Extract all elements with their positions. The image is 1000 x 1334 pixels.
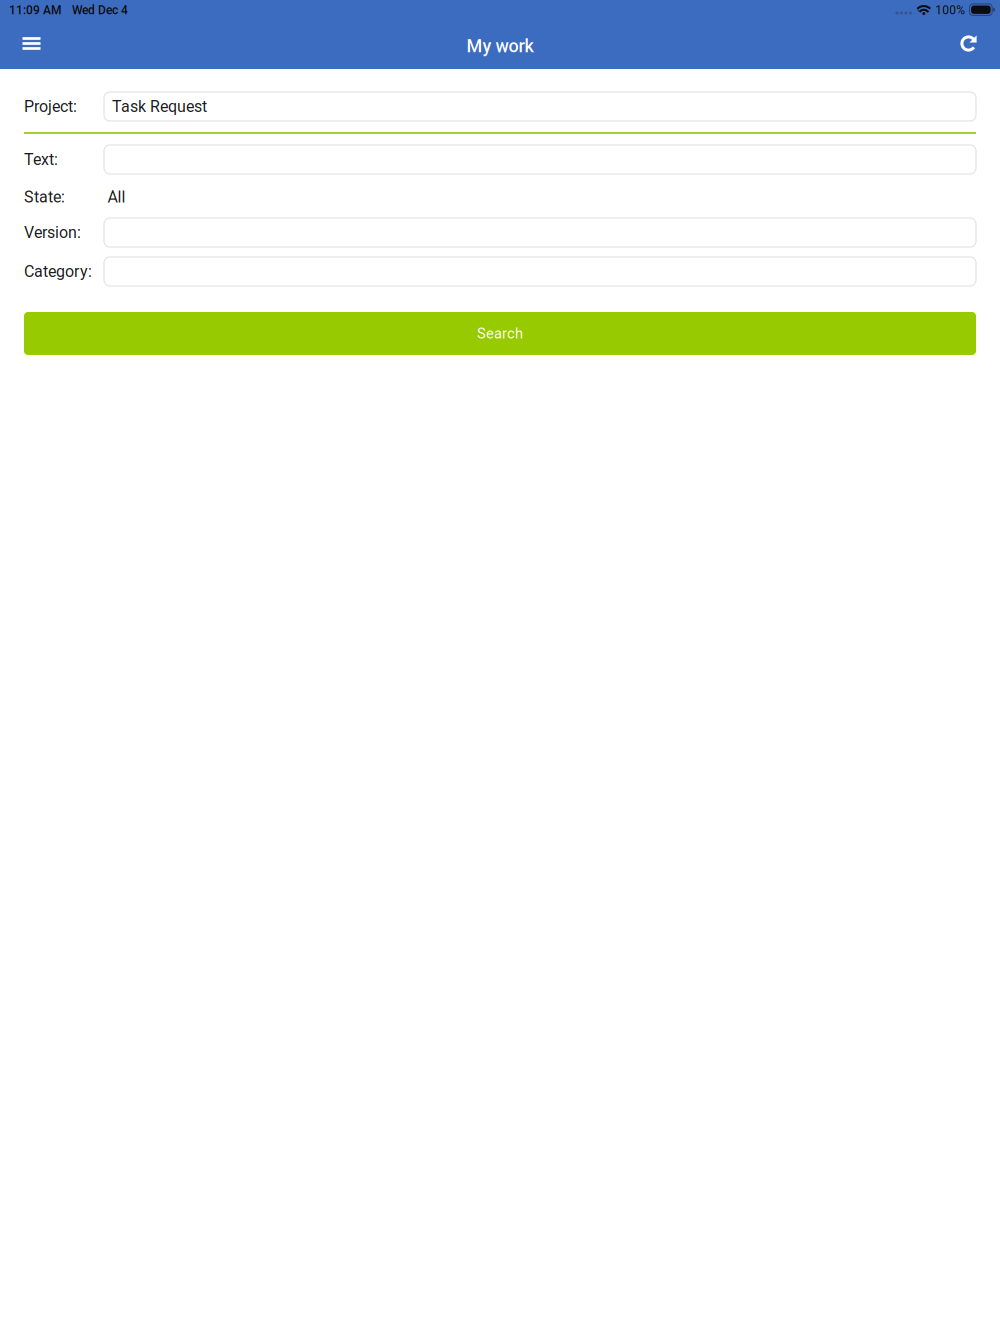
staticText: Search <box>477 325 523 342</box>
staticText: Project: <box>24 97 77 116</box>
button[interactable] <box>104 218 976 247</box>
staticText: My work <box>466 35 533 57</box>
button[interactable]: Refresh <box>946 23 991 68</box>
button[interactable] <box>104 145 976 174</box>
button[interactable] <box>104 257 976 286</box>
staticText: Task Request <box>112 97 207 116</box>
staticText: All <box>107 188 125 206</box>
staticText: Version: <box>24 223 81 242</box>
staticText: State: <box>24 188 65 206</box>
button[interactable]: All <box>104 184 976 210</box>
staticText: 11:09 AM <box>9 3 61 17</box>
button[interactable]: Menu <box>9 23 54 68</box>
staticText: Wed Dec 4 <box>72 3 128 17</box>
button[interactable]: Task Request <box>104 92 976 121</box>
staticText: 100% <box>935 3 965 17</box>
button[interactable]: Search <box>24 312 976 355</box>
staticText: Text: <box>24 150 58 169</box>
staticText: Category: <box>24 262 92 281</box>
